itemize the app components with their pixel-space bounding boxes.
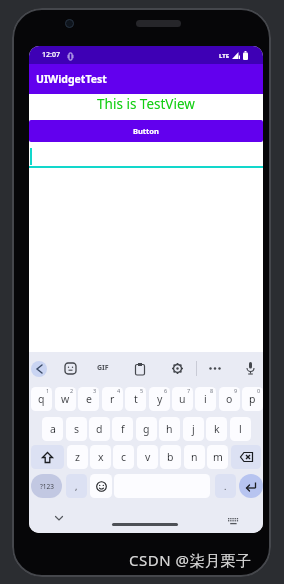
button[interactable] — [31, 445, 64, 469]
staticText: Button — [133, 126, 159, 136]
staticText: f — [121, 422, 125, 436]
staticText: . — [224, 480, 227, 492]
button[interactable]: u — [172, 387, 193, 411]
button[interactable]: l — [230, 417, 251, 441]
button[interactable]: m — [207, 445, 228, 469]
button[interactable]: ?123 — [31, 474, 62, 498]
button[interactable] — [172, 363, 183, 374]
staticText: c — [121, 450, 127, 464]
button[interactable] — [209, 367, 221, 370]
button[interactable]: p — [242, 387, 263, 411]
button[interactable] — [246, 362, 255, 375]
staticText: i — [204, 392, 207, 406]
staticText: z — [75, 450, 80, 464]
staticText: a — [50, 422, 56, 436]
button[interactable]: d — [89, 417, 110, 441]
staticText: q — [38, 392, 45, 406]
staticText: m — [213, 450, 223, 464]
button[interactable]: z — [67, 445, 88, 469]
button[interactable] — [112, 523, 178, 526]
staticText: 3 — [93, 387, 97, 394]
staticText: g — [143, 422, 150, 436]
staticText: e — [86, 392, 92, 406]
staticText: CSDN @柒月栗子 — [129, 550, 252, 570]
staticText: 9 — [234, 387, 238, 394]
button[interactable]: t — [125, 387, 146, 411]
staticText: t — [134, 392, 138, 406]
staticText: b — [167, 450, 174, 464]
staticText: This is TestView — [29, 95, 263, 113]
button[interactable] — [239, 474, 263, 498]
staticText: 0 — [257, 387, 261, 394]
staticText: 4 — [117, 387, 121, 394]
button[interactable]: w — [55, 387, 76, 411]
button[interactable] — [231, 445, 261, 469]
button[interactable] — [135, 363, 145, 375]
staticText: 1 — [46, 387, 50, 394]
button[interactable]: , — [66, 474, 87, 498]
button[interactable]: s — [66, 417, 87, 441]
staticText: UIWidgetTest — [36, 72, 107, 86]
staticText: 2 — [70, 387, 74, 394]
button[interactable]: r — [102, 387, 123, 411]
staticText: u — [179, 392, 186, 406]
button[interactable]: x — [90, 445, 111, 469]
staticText: v — [145, 450, 151, 464]
staticText: 8 — [210, 387, 214, 394]
button[interactable]: g — [136, 417, 157, 441]
staticText: r — [110, 392, 115, 406]
staticText: p — [249, 392, 256, 406]
staticText: 5 — [140, 387, 144, 394]
staticText: w — [61, 392, 70, 406]
button[interactable]: . — [215, 474, 236, 498]
staticText: 7 — [187, 387, 191, 394]
button[interactable]: a — [42, 417, 63, 441]
staticText: ?123 — [40, 482, 54, 491]
staticText: 6 — [164, 387, 168, 394]
staticText: h — [166, 422, 173, 436]
button[interactable]: q — [31, 387, 52, 411]
staticText: d — [96, 422, 103, 436]
button[interactable] — [65, 363, 76, 374]
button[interactable]: h — [159, 417, 180, 441]
button[interactable]: y — [149, 387, 170, 411]
staticText: y — [157, 392, 163, 406]
staticText: , — [75, 480, 78, 492]
button[interactable]: GIF — [97, 363, 109, 373]
button[interactable]: c — [113, 445, 134, 469]
button[interactable]: k — [206, 417, 227, 441]
button[interactable] — [31, 361, 47, 377]
button[interactable]: e — [78, 387, 99, 411]
button[interactable]: v — [137, 445, 158, 469]
button[interactable]: j — [183, 417, 204, 441]
staticText: k — [214, 422, 220, 436]
staticText: LTE — [219, 52, 230, 60]
staticText: o — [226, 392, 233, 406]
button[interactable] — [228, 518, 239, 525]
button[interactable]: i — [195, 387, 216, 411]
button[interactable]: n — [184, 445, 205, 469]
staticText: l — [239, 422, 242, 436]
staticText: s — [74, 422, 80, 436]
staticText: x — [98, 450, 104, 464]
button[interactable]: Button — [29, 120, 263, 142]
staticText: 12:07 — [42, 50, 60, 60]
button[interactable]: f — [112, 417, 133, 441]
button[interactable]: o — [219, 387, 240, 411]
staticText: j — [192, 422, 195, 436]
button[interactable] — [55, 516, 63, 521]
button[interactable]: b — [160, 445, 181, 469]
button[interactable] — [90, 474, 112, 498]
staticText: n — [191, 450, 198, 464]
